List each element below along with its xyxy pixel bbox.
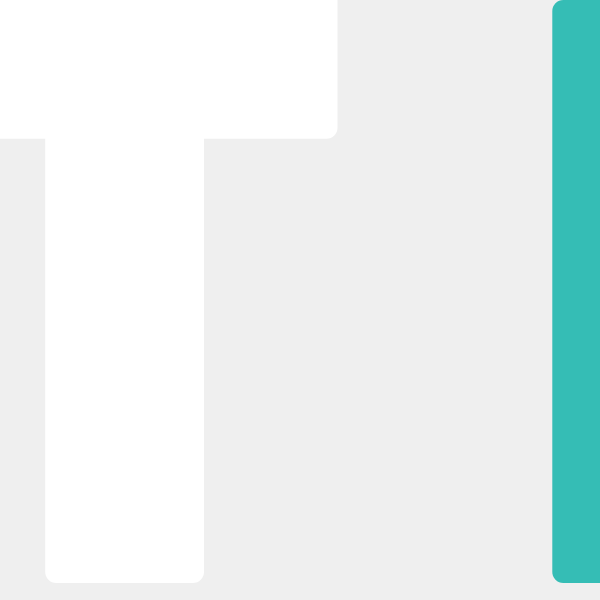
button[interactable]: Accent column	[552, 0, 600, 583]
